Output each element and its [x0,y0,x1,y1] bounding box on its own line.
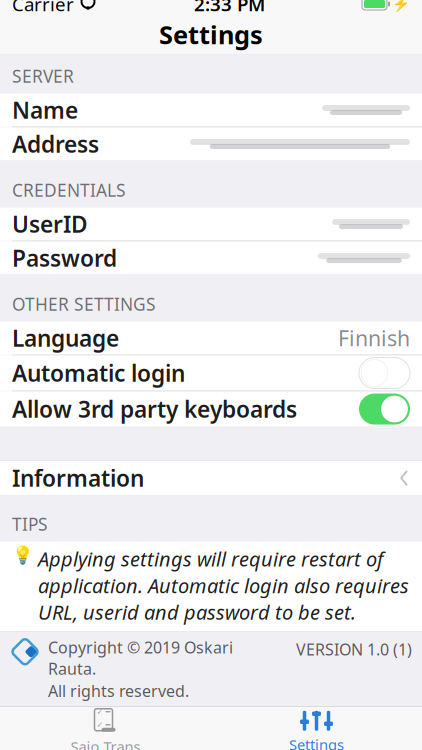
button[interactable]: Language [0,322,422,355]
button[interactable]: Settings [211,705,422,750]
staticText: ⚡ [392,0,410,12]
button[interactable]: Automatic login [0,356,422,391]
button[interactable]: Password [0,241,422,274]
staticText: Finnish [338,324,410,352]
staticText: 2:33 PM [194,0,265,16]
staticText: Sajo Trans [70,737,140,750]
staticText: Automatic login [12,358,185,388]
staticText: All rights reserved. [48,680,189,701]
button[interactable]: Address [0,127,422,160]
staticText: OTHER SETTINGS [12,292,156,315]
staticText: Information [12,463,144,493]
button[interactable]: ✓ [0,703,211,750]
staticText: Name [12,95,78,125]
staticText: Applying settings will require restart o… [38,546,409,625]
staticText: ✓ [96,720,103,729]
staticText: 💡 [12,546,34,565]
staticText: SERVER [12,64,74,87]
staticText: Address [12,129,99,159]
staticText: UserID [12,209,88,239]
button[interactable]: Name [0,93,422,126]
staticText: Allow 3rd party keyboards [12,394,297,424]
staticText: ✓ [96,707,103,716]
staticText: Settings [159,18,263,51]
button[interactable]: UserID [0,207,422,240]
staticText: CREDENTIALS [12,178,126,201]
staticText: Password [12,243,117,273]
staticText: Settings [289,735,344,750]
staticText: Copyright © 2019 Oskari Rauta. [48,637,233,679]
button[interactable]: Allow 3rd party keyboards [0,392,422,427]
staticText: Language [12,323,119,353]
staticText: Carrier [12,0,74,16]
staticText: VERSION 1.0 (1) [296,639,412,660]
staticText: TIPS [12,513,48,536]
button[interactable]: Information [0,461,422,495]
